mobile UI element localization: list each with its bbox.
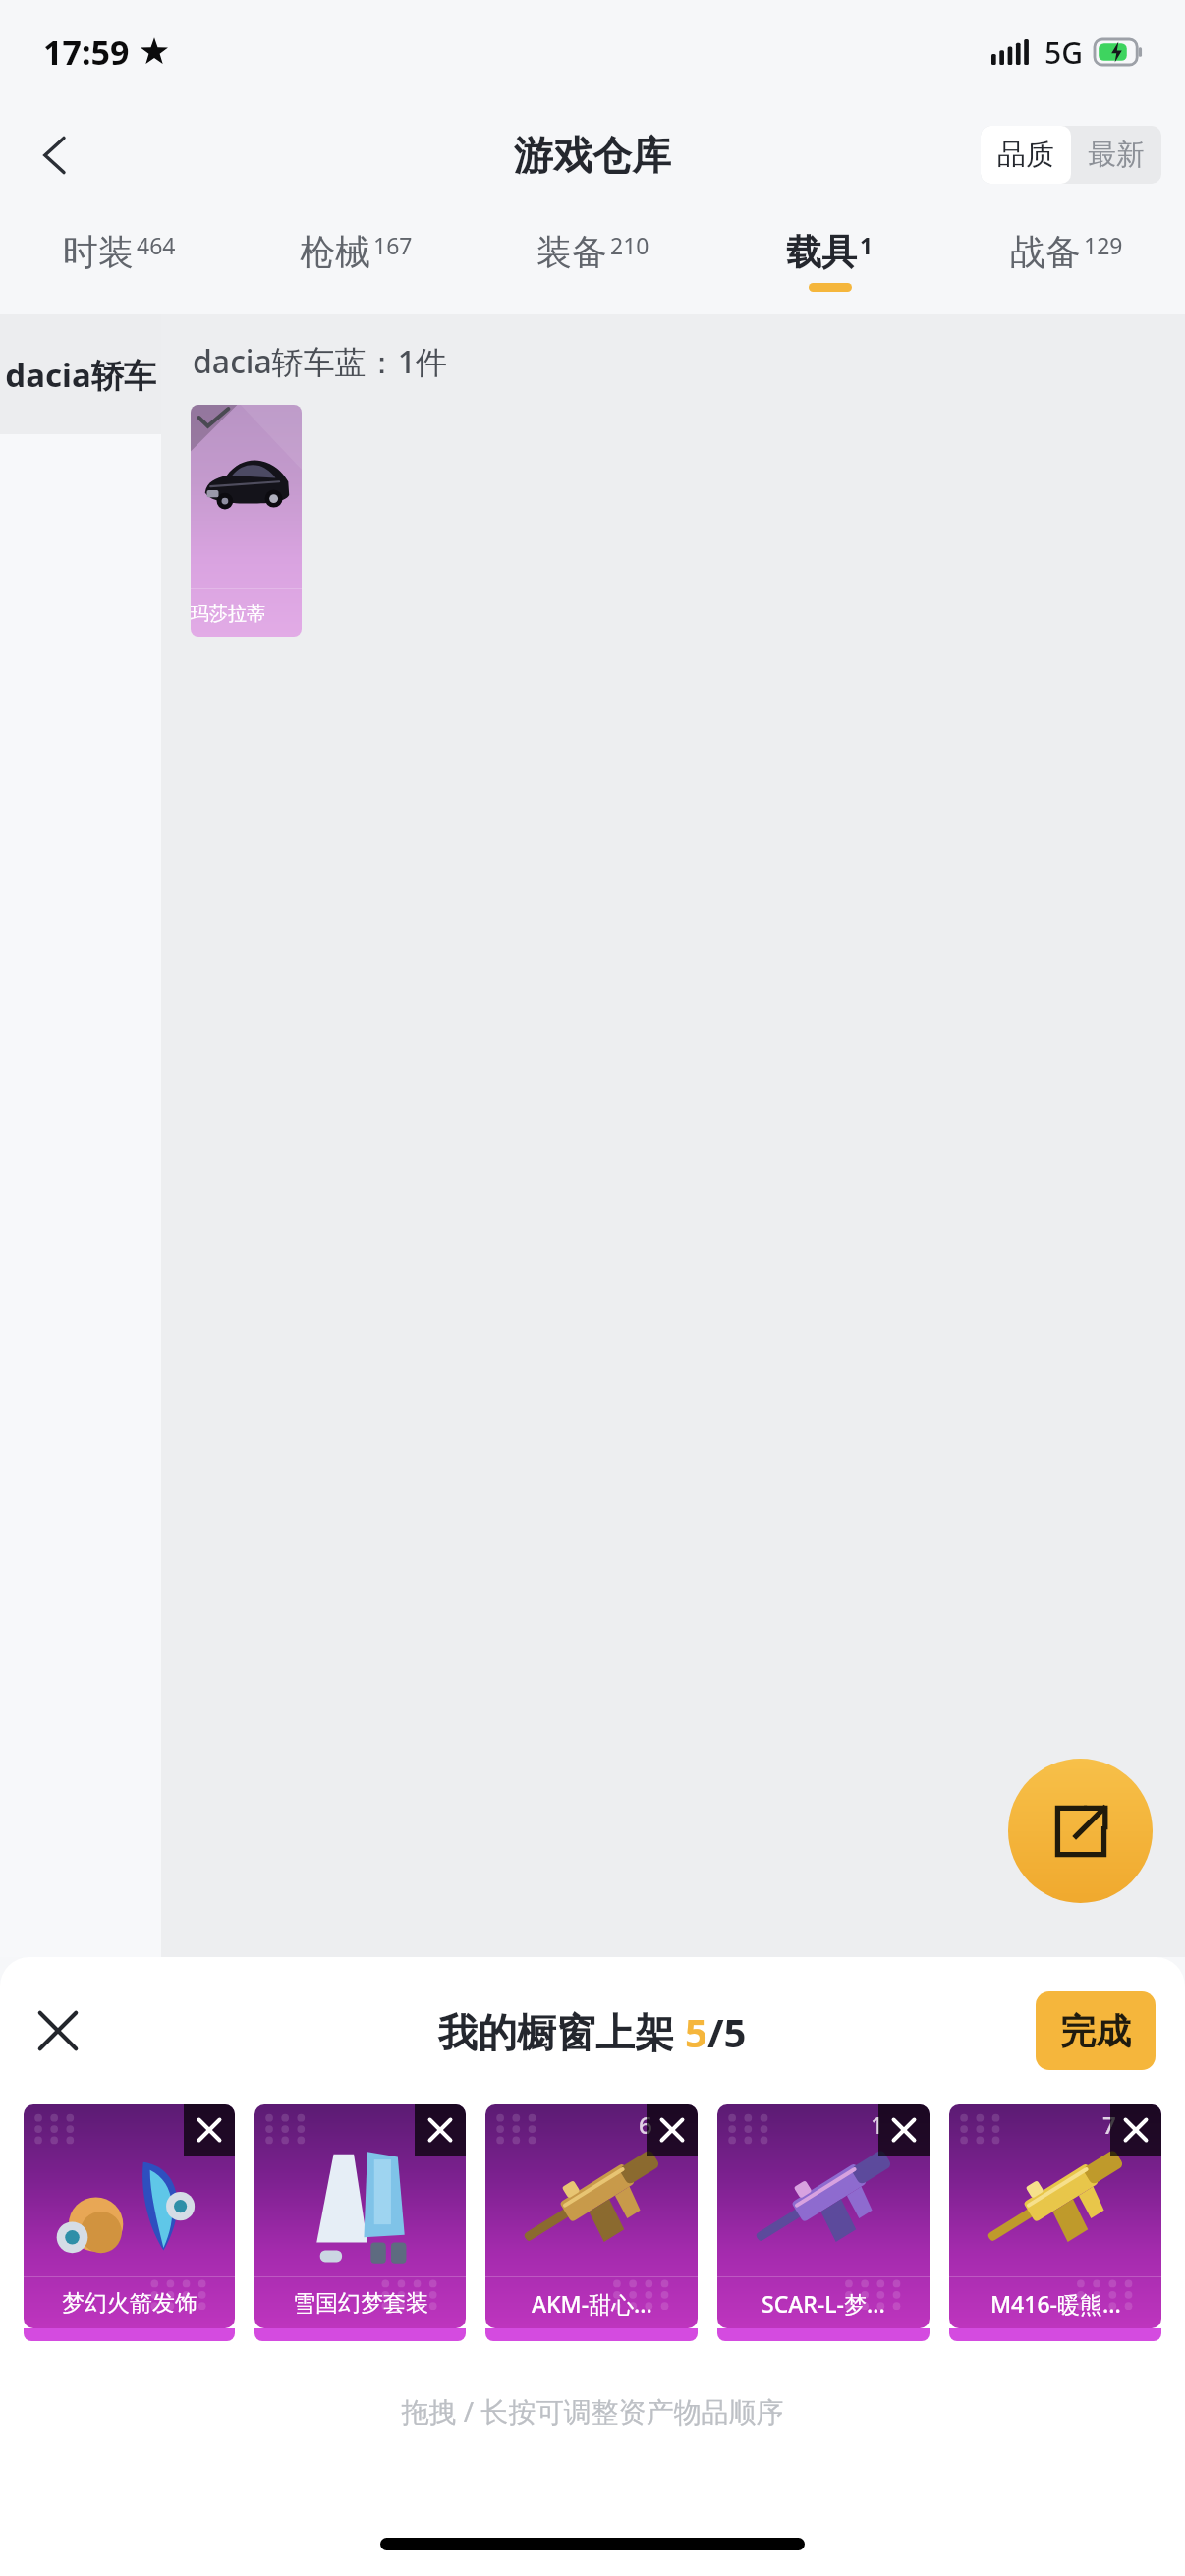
staticText: 梦幻火箭发饰 — [62, 2289, 197, 2318]
button[interactable]: 品质 — [981, 126, 1071, 184]
staticText: 7 — [1102, 2108, 1116, 2141]
button[interactable]: 枪械 — [238, 206, 475, 314]
staticText: dacia轿车蓝：1件 — [193, 340, 448, 383]
button[interactable]: 6 — [485, 2104, 698, 2328]
button[interactable]: Remove SCAR-L-梦... — [878, 2104, 930, 2156]
button[interactable]: Remove 雪国幻梦套装 — [415, 2104, 466, 2156]
staticText: 17:59 — [43, 29, 130, 75]
button[interactable]: 玛莎拉蒂 Qu... — [191, 405, 302, 637]
button[interactable]: Remove 梦幻火箭发饰 — [184, 2104, 235, 2156]
staticText: 枪械 — [300, 230, 370, 274]
button[interactable]: 完成 — [1036, 1991, 1156, 2070]
staticText: 1 — [871, 2108, 884, 2141]
staticText: SCAR-L-梦... — [762, 2288, 885, 2319]
staticText: 5G — [1044, 32, 1083, 73]
button[interactable]: Open external link — [1008, 1759, 1153, 1903]
button[interactable]: Remove AKM-甜心... — [647, 2104, 698, 2156]
staticText: 最新 — [1088, 137, 1145, 173]
staticText: 玛莎拉蒂 Qu... — [191, 600, 302, 626]
button[interactable]: 装备 — [475, 206, 711, 314]
staticText: 我的橱窗上架 — [438, 2004, 685, 2058]
staticText: dacia轿车蓝 — [0, 353, 161, 397]
staticText: 载具 — [786, 230, 857, 274]
staticText: 210 — [610, 230, 649, 260]
staticText: /5 — [707, 2005, 747, 2058]
staticText: 5 — [685, 2005, 707, 2058]
staticText: 雪国幻梦套装 — [293, 2289, 428, 2318]
button[interactable]: 7 — [949, 2104, 1161, 2328]
staticText: 时装 — [63, 230, 134, 274]
staticText: 464 — [137, 230, 176, 260]
button[interactable]: 战备 — [948, 206, 1185, 314]
staticText: 品质 — [997, 137, 1054, 173]
button[interactable]: 时装 — [0, 206, 238, 314]
staticText: 装备 — [536, 230, 607, 274]
button[interactable]: 最新 — [1071, 126, 1161, 184]
staticText: 1 — [860, 230, 874, 260]
staticText: 完成 — [1060, 2009, 1131, 2053]
staticText: M416-暖熊... — [990, 2288, 1121, 2319]
button[interactable]: 1 — [717, 2104, 930, 2328]
button[interactable]: Remove 雪国幻梦套装 — [254, 2104, 466, 2328]
staticText: 战备 — [1010, 230, 1081, 274]
button[interactable]: dacia轿车蓝 — [0, 314, 161, 434]
staticText: 129 — [1084, 230, 1123, 260]
button[interactable]: Remove 梦幻火箭发饰 — [24, 2104, 235, 2328]
button[interactable]: Remove M416-暖熊... — [1110, 2104, 1161, 2156]
staticText: AKM-甜心... — [532, 2288, 652, 2319]
staticText: 167 — [373, 230, 413, 260]
button[interactable]: Back — [14, 113, 98, 197]
button[interactable]: Close — [14, 1987, 102, 2075]
staticText: 游戏仓库 — [514, 131, 671, 180]
button[interactable]: 载具 — [711, 206, 948, 314]
staticText: 6 — [639, 2108, 652, 2141]
staticText: 拖拽 / 长按可调整资产物品顺序 — [0, 2392, 1185, 2430]
